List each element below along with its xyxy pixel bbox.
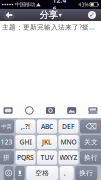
staticText: 换行 [79,169,93,177]
button[interactable]: JKL [37,135,57,149]
staticText: 分享 [39,9,57,21]
button[interactable]: MNO [58,135,78,149]
button[interactable]: GHI [15,135,35,149]
button[interactable]: 123 [0,135,14,149]
staticText: 关文 [84,138,98,146]
button[interactable]: 空格 [26,166,58,180]
button[interactable]: Keyboard tool [40,103,61,118]
button[interactable]: 拼 [0,150,14,164]
button[interactable]: ⌫ [80,119,101,133]
staticText: ▾ [58,11,61,19]
button[interactable]: Keyboard tool [82,103,101,118]
button[interactable]: DEF [58,119,78,133]
staticText: ⌫ [85,122,96,131]
staticText: MNO [60,138,76,146]
button[interactable]: 。 [60,166,74,180]
button[interactable] [4,166,14,180]
button[interactable]: 换行 [80,150,101,164]
button[interactable]: Keyboard tool [0,103,19,118]
staticText: 空格 [35,169,49,177]
staticText: PQRS [17,153,34,162]
staticText: 拼 [3,153,10,162]
staticText: 换行 [84,153,98,162]
staticText: DEF [62,122,75,131]
button[interactable]: 中英 [0,119,14,133]
staticText: 43% [78,1,88,8]
staticText: ,.?! [21,122,30,131]
staticText: ABC [41,122,53,131]
button[interactable]: 换行 [75,166,97,180]
staticText: TUV [40,153,53,162]
button[interactable] [15,166,25,180]
staticText: 中国移动 [15,1,35,8]
button[interactable]: WXYZ [58,150,78,164]
staticText: WXYZ [59,153,77,162]
button[interactable]: ,.?! [15,119,35,133]
staticText: 中英 [1,123,11,130]
button[interactable]: Keyboard tool [61,103,82,118]
button[interactable]: 关文 [80,135,101,149]
staticText: ✓ [89,11,95,19]
button[interactable]: Keyboard tool [19,103,40,118]
staticText: 12:46 [52,0,66,13]
button[interactable]: ABC [37,119,57,133]
staticText: JKL [42,138,52,146]
staticText: 主题：更新完输入法来了?挺有趣... [2,22,99,31]
staticText: 123 [0,138,12,146]
staticText: GHI [19,138,31,146]
button[interactable]: TUV [37,150,57,164]
button[interactable]: Back [2,9,16,21]
button[interactable]: PQRS [15,150,35,164]
staticText: 。 [63,169,70,177]
button[interactable]: Done [85,9,99,21]
